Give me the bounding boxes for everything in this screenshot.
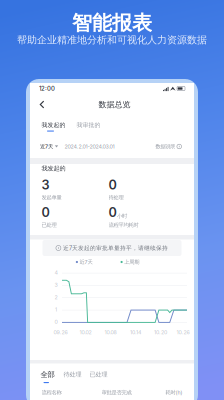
staticText: 审批是否完成: [101, 389, 131, 396]
button[interactable]: 待处理: [63, 363, 81, 385]
staticText: 耗时(h): [165, 389, 182, 396]
staticText: 12:00: [39, 85, 55, 92]
staticText: 我审批的: [76, 121, 100, 129]
staticText: 10.02: [79, 329, 91, 335]
button[interactable]: 已处理: [89, 363, 107, 385]
staticText: 发起单量: [41, 194, 61, 201]
staticText: 0: [108, 205, 116, 220]
staticText: 1: [55, 306, 57, 313]
staticText: 智能报表: [72, 10, 152, 36]
staticText: 小时: [117, 213, 127, 219]
staticText: 近7天发起的审批单量持平，请继续保持: [63, 244, 168, 252]
staticText: 帮助企业精准地分析和可视化人力资源数据: [17, 34, 207, 46]
staticText: 3: [54, 282, 57, 288]
staticText: 0: [41, 205, 49, 220]
staticText: 3: [41, 177, 49, 193]
staticText: 上周期: [124, 259, 139, 265]
staticText: 已处理: [89, 371, 107, 378]
staticText: 数据说明: [155, 143, 175, 150]
button[interactable]: 全部: [40, 363, 54, 385]
staticText: 2: [54, 294, 57, 300]
button[interactable]: 返回: [34, 95, 50, 113]
staticText: 近7天: [40, 143, 53, 150]
staticText: 全部: [40, 370, 54, 379]
staticText: 我发起的: [41, 165, 65, 172]
staticText: 4: [54, 269, 57, 276]
staticText: 近7天: [79, 259, 92, 265]
staticText: 数据总览: [98, 99, 130, 110]
staticText: 10.26: [176, 329, 189, 335]
staticText: 10.08: [104, 329, 116, 335]
button[interactable]: 近7天: [40, 143, 58, 150]
staticText: 待处理: [63, 371, 81, 378]
staticText: 10.14: [130, 329, 141, 335]
staticText: 2024.2.01-2024.03.01: [64, 143, 114, 150]
staticText: 待处理: [108, 194, 123, 201]
staticText: 10.20: [154, 329, 167, 335]
button[interactable]: 数据说明: [155, 143, 181, 150]
button[interactable]: 我审批的: [76, 115, 100, 135]
staticText: 已处理: [41, 222, 56, 228]
staticText: 0: [54, 319, 57, 325]
staticText: 09.26: [53, 329, 67, 335]
staticText: 我发起的: [41, 121, 65, 129]
staticText: 0: [108, 177, 116, 193]
staticText: 流程平均耗时: [108, 222, 138, 228]
staticText: 流程名称: [41, 389, 61, 396]
button[interactable]: 我发起的: [41, 115, 65, 135]
